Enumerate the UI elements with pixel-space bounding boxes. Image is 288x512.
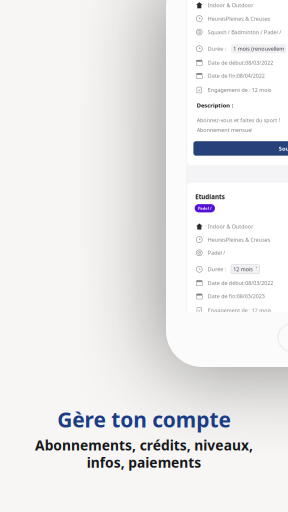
staticText: Abonnez-vous et faites du sport ! xyxy=(218,410,288,431)
staticText: Gère ton compte xyxy=(171,405,288,489)
staticText: Description : xyxy=(218,364,288,387)
staticText: Date de fin:08/04/2022 xyxy=(251,277,288,298)
staticText: Date de début:08/03/2022 xyxy=(251,237,288,258)
staticText: HeuresPleines & Creuses xyxy=(251,105,288,126)
staticText: Indoor & Outdoor xyxy=(251,65,288,86)
staticText: Squash / Badminton / Padel / xyxy=(251,146,288,167)
staticText: Abonnement mensuel xyxy=(218,439,288,460)
